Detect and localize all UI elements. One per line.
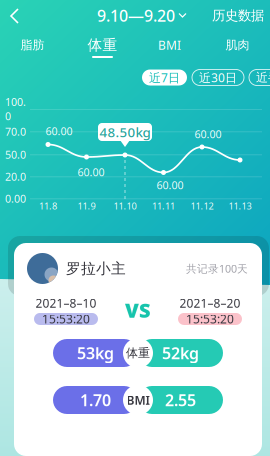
staticText: 共记录100天 bbox=[186, 261, 248, 276]
staticText: 脂肪 bbox=[20, 38, 44, 52]
button[interactable]: BMI bbox=[137, 33, 202, 59]
staticText: 11.12 bbox=[190, 200, 213, 212]
staticText: 15:53:20 bbox=[42, 311, 90, 327]
button[interactable]: 体重 bbox=[70, 33, 135, 59]
button[interactable]: Back bbox=[2, 1, 32, 31]
button[interactable]: 近7日 bbox=[142, 69, 187, 85]
staticText: 历史数据 bbox=[212, 7, 264, 24]
staticText: 11.10 bbox=[113, 200, 136, 212]
staticText: 2021–8–10 bbox=[35, 295, 96, 311]
staticText: 近7日 bbox=[149, 69, 180, 85]
staticText: 11.8 bbox=[39, 200, 57, 212]
staticText: 20.0 bbox=[5, 169, 26, 184]
staticText: 体重 bbox=[126, 346, 150, 360]
button[interactable]: 近30日 bbox=[192, 69, 244, 85]
staticText: 60.00 bbox=[156, 178, 183, 192]
staticText: 48.50kg bbox=[99, 123, 150, 141]
staticText: BMI bbox=[158, 37, 181, 53]
staticText: 53kg bbox=[77, 342, 114, 364]
staticText: 100.0 bbox=[5, 95, 26, 123]
button[interactable]: 脂肪 bbox=[0, 33, 65, 59]
staticText: BMI bbox=[126, 392, 149, 408]
staticText: 60.00 bbox=[45, 124, 72, 138]
button[interactable]: 9.10—9.20 bbox=[97, 2, 187, 29]
staticText: 9.10—9.20 bbox=[97, 5, 175, 26]
staticText: 1.70 bbox=[80, 389, 111, 411]
button[interactable]: 肌肉 bbox=[205, 33, 270, 59]
staticText: 60.00 bbox=[77, 165, 104, 179]
staticText: VS bbox=[125, 297, 151, 323]
staticText: 罗拉小主 bbox=[66, 259, 126, 277]
staticText: 肌肉 bbox=[225, 38, 249, 52]
staticText: 50.0 bbox=[5, 147, 26, 162]
staticText: 70.0 bbox=[5, 124, 26, 139]
staticText: 11.9 bbox=[77, 200, 95, 212]
button[interactable]: 历史数据 bbox=[212, 2, 264, 29]
staticText: 60.00 bbox=[194, 127, 221, 141]
staticText: 0.00 bbox=[5, 191, 26, 206]
staticText: 近半年 bbox=[256, 70, 270, 85]
staticText: 2.55 bbox=[165, 389, 196, 411]
staticText: 体重 bbox=[87, 36, 117, 54]
staticText: 2021–8–20 bbox=[179, 295, 240, 311]
staticText: 近30日 bbox=[199, 69, 237, 85]
button[interactable]: 近半年 bbox=[249, 69, 270, 85]
staticText: 15:53:20 bbox=[186, 311, 234, 327]
staticText: 52kg bbox=[162, 342, 199, 364]
staticText: 11.13 bbox=[228, 200, 251, 212]
staticText: 11.11 bbox=[152, 200, 175, 212]
